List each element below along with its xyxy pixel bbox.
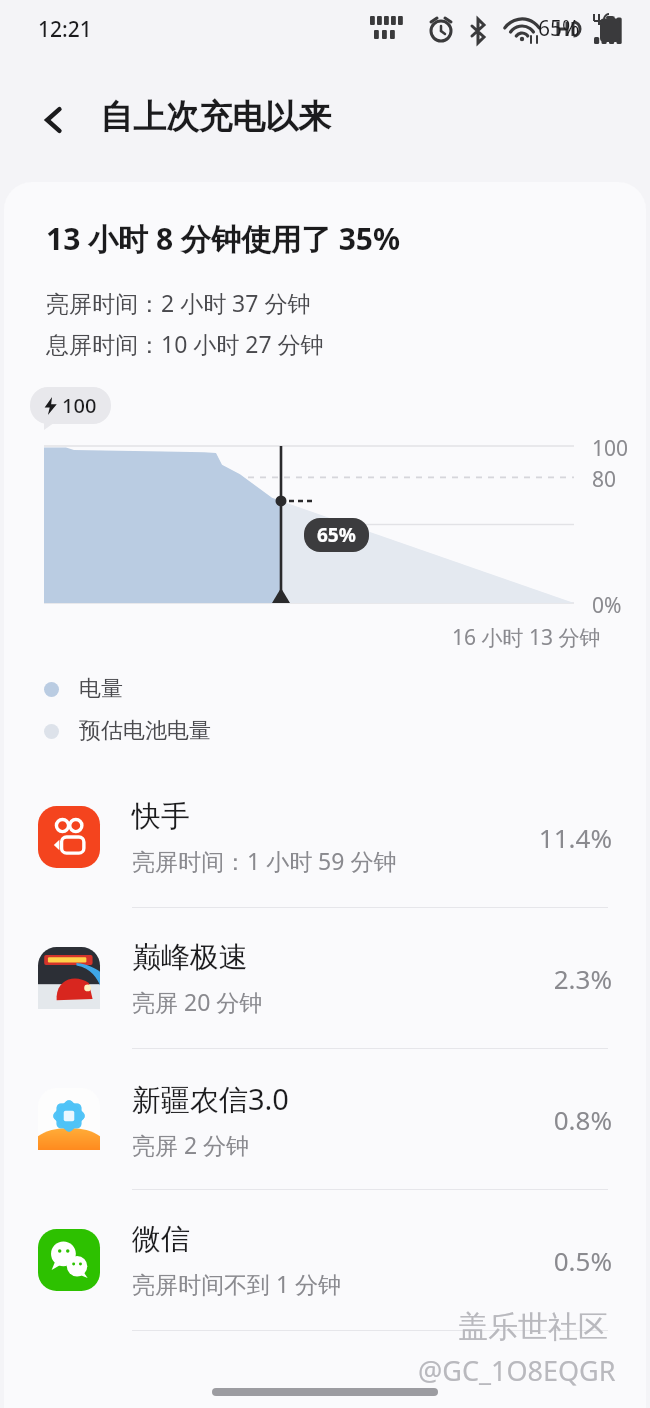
staticText: 亮屏 20 分钟 — [132, 986, 263, 1017]
button[interactable]: 巅峰极速 — [4, 908, 646, 1048]
staticText: 盖乐世社区 — [458, 1308, 608, 1346]
staticText: @GC_1O8EQGR — [418, 1352, 616, 1389]
staticText: 亮屏 2 分钟 — [132, 1129, 250, 1160]
staticText: 电量 — [79, 675, 123, 703]
button[interactable]: 微信 — [4, 1190, 646, 1330]
staticText: 65% — [538, 14, 580, 43]
staticText: 亮屏时间：1 小时 59 分钟 — [132, 845, 397, 876]
staticText: 0% — [592, 591, 622, 620]
staticText: 0.8% — [553, 1102, 612, 1137]
staticText: 新疆农信3.0 — [132, 1079, 289, 1119]
staticText: 2.3% — [553, 961, 612, 996]
staticText: 亮屏时间：2 小时 37 分钟 — [46, 287, 311, 318]
staticText: 13 小时 8 分钟使用了 35% — [46, 218, 401, 259]
staticText: 80 — [592, 465, 617, 494]
staticText: 12:21 — [38, 15, 92, 44]
staticText: 巅峰极速 — [132, 939, 248, 976]
button[interactable]: Back — [22, 88, 86, 152]
button[interactable]: 快手 — [4, 767, 646, 907]
staticText: 亮屏时间不到 1 分钟 — [132, 1268, 342, 1299]
button[interactable]: 新疆农信3.0 — [4, 1049, 646, 1189]
staticText: 100 — [592, 434, 629, 463]
staticText: 自上次充电以来 — [100, 96, 331, 138]
staticText: 0.5% — [553, 1243, 612, 1278]
staticText: 微信 — [132, 1221, 190, 1258]
staticText: 65% — [317, 522, 356, 548]
staticText: 16 小时 13 分钟 — [452, 623, 601, 652]
staticText: 快手 — [132, 798, 190, 835]
staticText: 预估电池电量 — [79, 717, 211, 745]
staticText: 11.4% — [538, 820, 612, 855]
staticText: 息屏时间：10 小时 27 分钟 — [46, 328, 324, 359]
staticText: 100 — [62, 392, 97, 419]
